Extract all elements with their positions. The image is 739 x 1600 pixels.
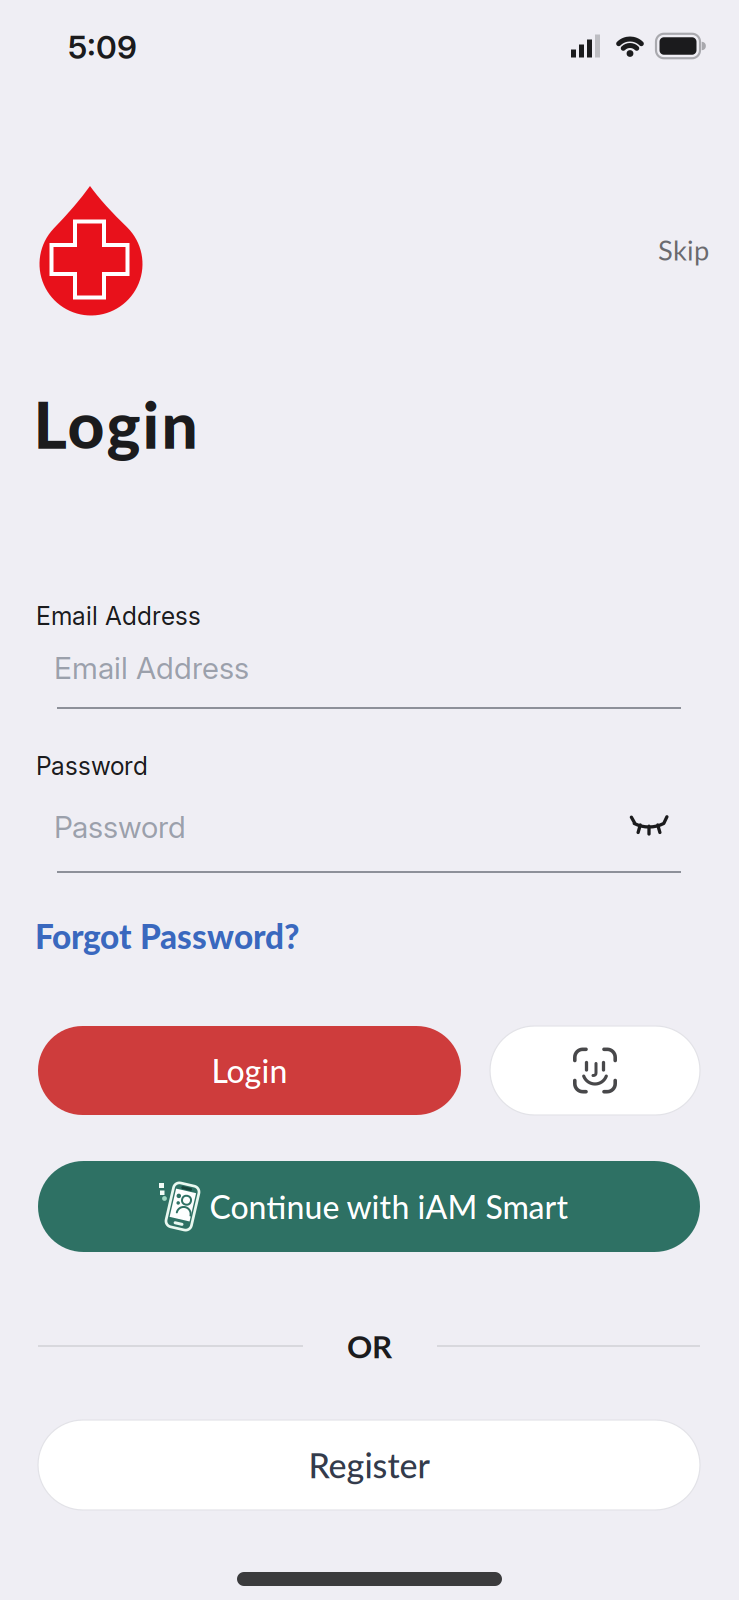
button[interactable]: Login with Face ID (490, 1026, 700, 1115)
staticText: Email Address (36, 601, 201, 631)
staticText: OR (347, 1327, 392, 1365)
staticText: Continue with iAM Smart (209, 1187, 568, 1226)
button[interactable]: Show password (618, 798, 682, 854)
staticText: Forgot Password? (35, 916, 300, 956)
staticText: Skip (658, 234, 709, 266)
staticText: Login (33, 386, 197, 462)
staticText: Login (211, 1051, 287, 1090)
staticText: Password (54, 809, 186, 845)
button[interactable]: Skip (589, 220, 709, 280)
staticText: Password (36, 751, 148, 781)
button[interactable]: Login (38, 1026, 461, 1115)
staticText: Email Address (54, 650, 249, 686)
staticText: 5:09 (68, 28, 137, 66)
button[interactable]: Register (38, 1420, 700, 1510)
button[interactable]: Continue with iAM Smart (38, 1161, 700, 1252)
staticText: Register (308, 1445, 429, 1485)
button[interactable]: Forgot Password? (35, 906, 435, 966)
